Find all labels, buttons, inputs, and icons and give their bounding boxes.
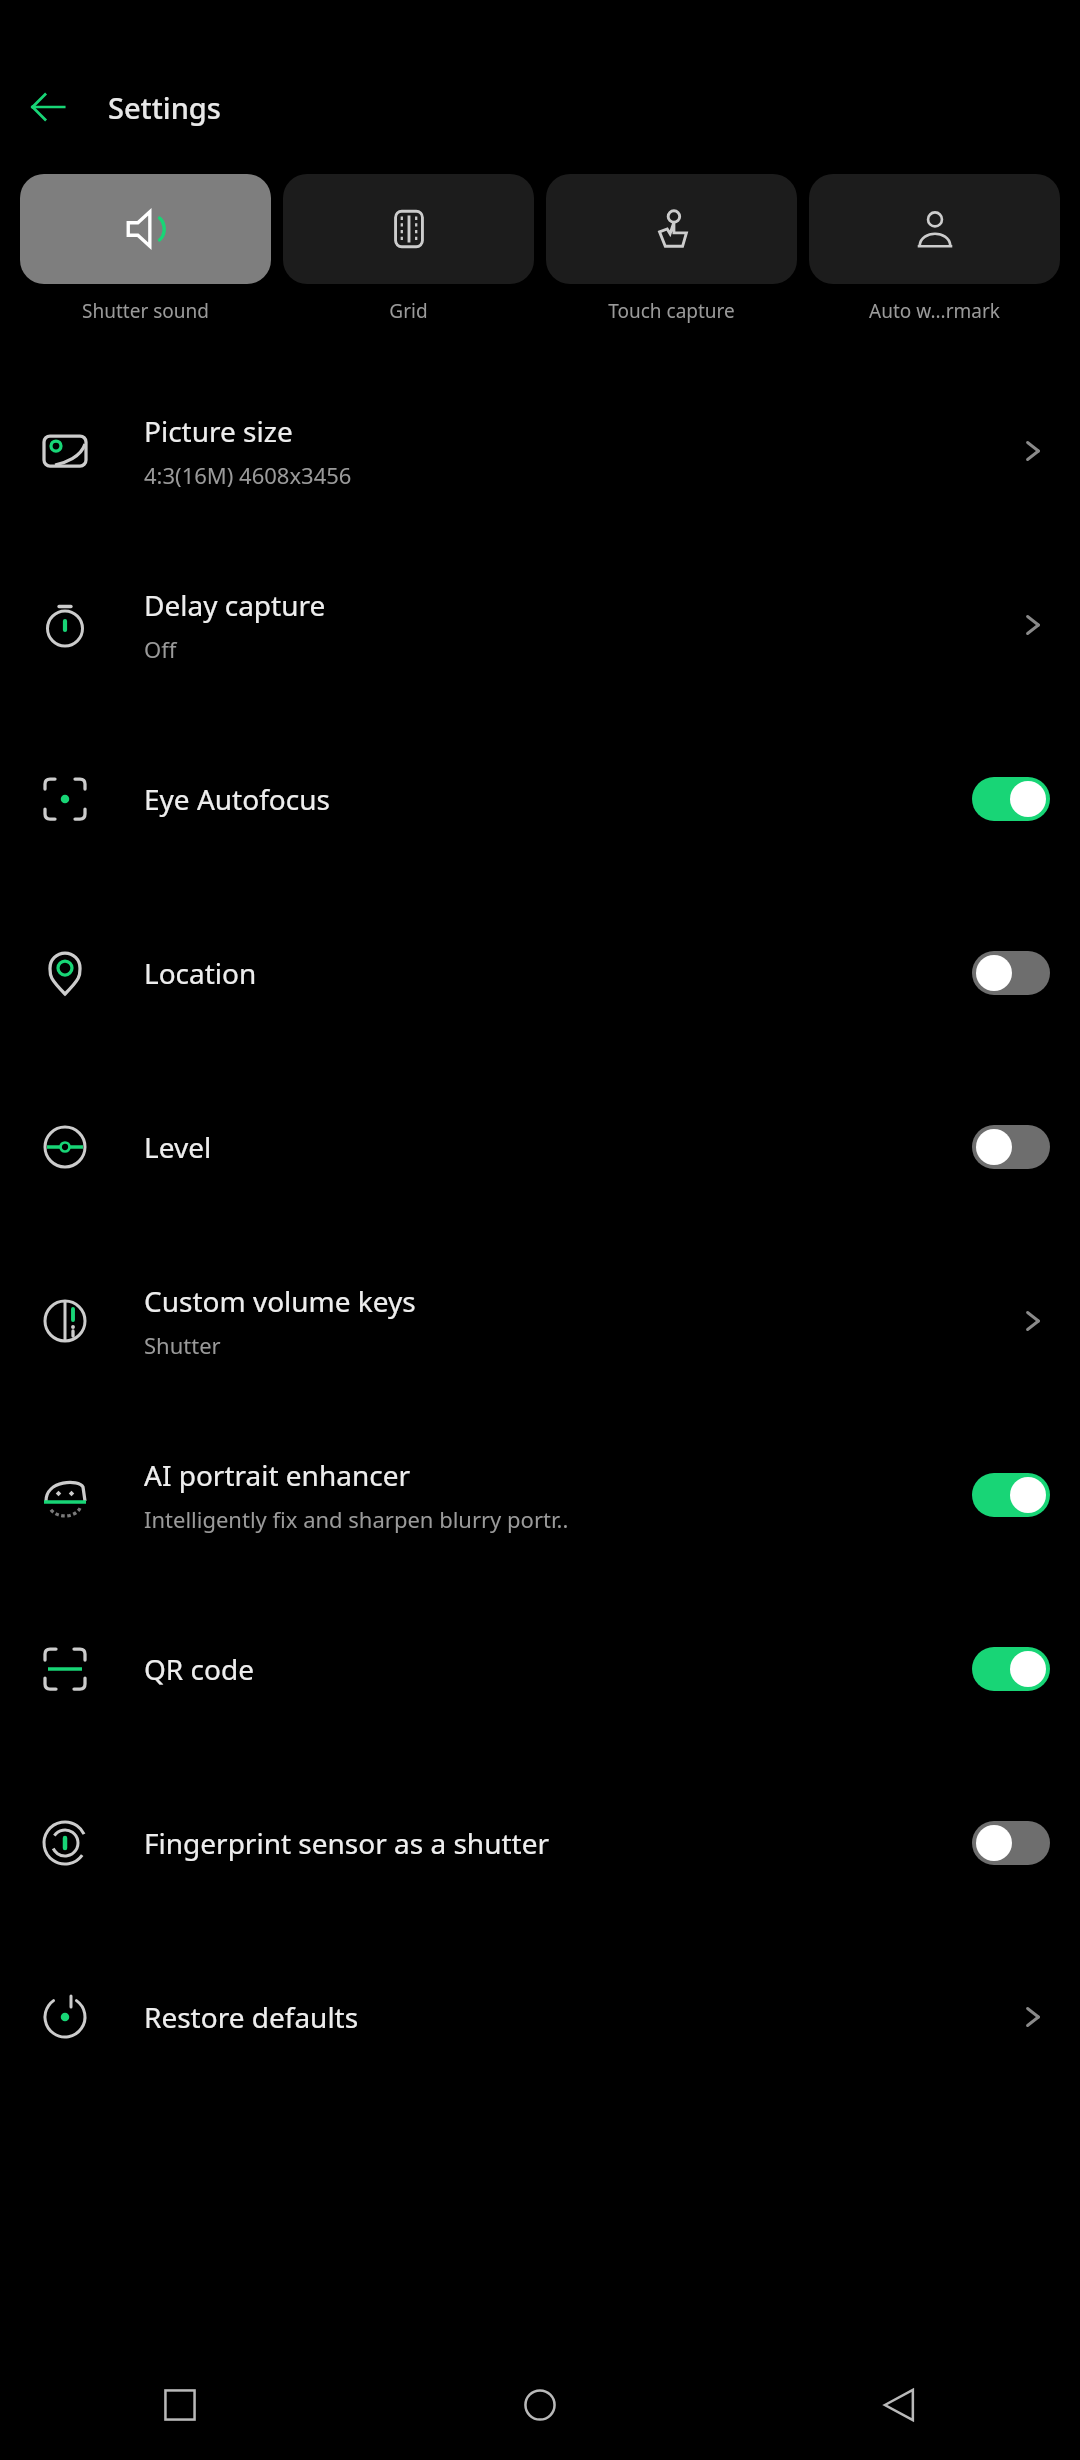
staticText: Shutter sound [82,298,209,324]
staticText: QR code [144,1650,254,1688]
button[interactable]: Eye Autofocus [0,712,1080,886]
button[interactable]: QR code [0,1582,1080,1756]
staticText: Picture size [144,412,293,450]
button[interactable]: On [972,1647,1050,1691]
button[interactable]: Fingerprint sensor as a shutter [0,1756,1080,1930]
button[interactable]: Off [972,951,1050,995]
button[interactable]: Back [720,2350,1080,2460]
staticText: Eye Autofocus [144,780,330,818]
button[interactable]: Back [18,77,78,137]
button[interactable]: On [972,1473,1050,1517]
button[interactable]: AI portrait enhancer [0,1408,1080,1582]
button[interactable]: Shutter sound [20,174,271,324]
button[interactable]: On [972,777,1050,821]
button[interactable]: Level [0,1060,1080,1234]
button[interactable]: Delay capture [0,538,1080,712]
staticText: 4:3(16M) 4608x3456 [144,460,352,490]
button[interactable]: Restore defaults [0,1930,1080,2104]
staticText: Restore defaults [144,1998,359,2036]
staticText: Level [144,1128,212,1166]
staticText: Delay capture [144,586,326,624]
button[interactable]: Location [0,886,1080,1060]
staticText: Off [144,634,177,664]
button[interactable]: Recents [0,2350,360,2460]
staticText: Location [144,954,257,992]
staticText: Grid [389,298,428,324]
staticText: Auto w...rmark [869,298,1000,324]
button[interactable]: Picture size [0,364,1080,538]
staticText: Intelligently fix and sharpen blurry por… [144,1504,569,1534]
button[interactable]: Touch capture [546,174,797,324]
button[interactable]: Off [972,1821,1050,1865]
staticText: Custom volume keys [144,1282,416,1320]
staticText: Fingerprint sensor as a shutter [144,1824,550,1862]
staticText: Shutter [144,1330,221,1360]
staticText: AI portrait enhancer [144,1456,411,1494]
button[interactable]: Custom volume keys [0,1234,1080,1408]
staticText: Settings [108,88,221,127]
button[interactable]: Home [360,2350,720,2460]
button[interactable]: Off [972,1125,1050,1169]
button[interactable]: Auto w...rmark [809,174,1060,324]
button[interactable]: Grid [283,174,534,324]
staticText: Touch capture [608,298,735,324]
